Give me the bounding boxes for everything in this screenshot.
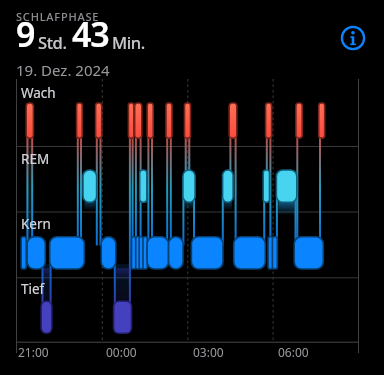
staticText: 03:00: [193, 344, 224, 360]
staticText: Wach: [21, 84, 56, 102]
staticText: 9: [16, 11, 35, 57]
staticText: 43: [72, 11, 109, 57]
staticText: SCHLAFPHASE: [16, 9, 100, 24]
staticText: Std.: [38, 31, 67, 53]
staticText: Min.: [112, 31, 145, 53]
staticText: Tief: [21, 280, 45, 298]
staticText: 19. Dez. 2024: [16, 60, 110, 80]
staticText: 06:00: [278, 344, 309, 360]
button[interactable]: [340, 25, 366, 51]
staticText: 00:00: [106, 344, 137, 360]
staticText: REM: [21, 150, 50, 168]
staticText: Kern: [21, 215, 51, 233]
staticText: 21:00: [18, 344, 49, 360]
